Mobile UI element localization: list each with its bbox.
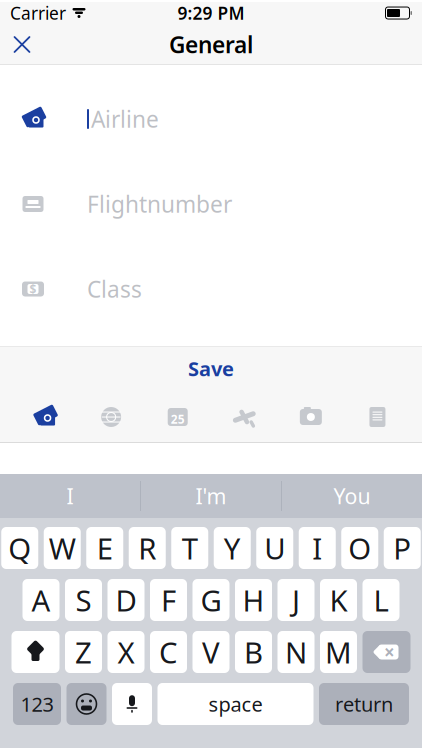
staticText: W <box>49 528 76 567</box>
button[interactable]: B <box>235 631 272 673</box>
button[interactable]: space <box>157 683 313 725</box>
button[interactable]: $ <box>0 265 422 313</box>
button[interactable]: L <box>362 579 399 621</box>
button[interactable]: D <box>107 579 144 621</box>
staticText: S <box>75 580 91 619</box>
button[interactable]: Save <box>0 346 422 391</box>
staticText: Q <box>8 528 31 567</box>
button[interactable]: Airline <box>23 395 67 439</box>
staticText: H <box>242 580 264 619</box>
button[interactable]: I <box>0 474 140 518</box>
staticText: C <box>159 632 178 671</box>
staticText: J <box>292 580 300 619</box>
staticText: X <box>117 632 134 671</box>
button[interactable]: W <box>44 527 81 569</box>
button[interactable]: S <box>65 579 102 621</box>
staticText: 25 <box>171 411 185 427</box>
button[interactable]: R <box>129 527 166 569</box>
button[interactable]: Shift <box>11 631 59 673</box>
button[interactable]: P <box>384 527 421 569</box>
staticText: M <box>325 632 352 671</box>
button[interactable]: Photo <box>289 395 333 439</box>
button[interactable]: I'm <box>141 474 281 518</box>
button[interactable]: N <box>277 631 314 673</box>
staticText: P <box>393 528 411 567</box>
button[interactable]: 123 <box>13 683 61 725</box>
staticText: D <box>115 580 136 619</box>
staticText: B <box>244 632 263 671</box>
staticText: L <box>373 580 388 619</box>
button[interactable]: Emoji <box>66 683 106 725</box>
button[interactable]: X <box>107 631 144 673</box>
button[interactable]: Close <box>0 24 44 65</box>
staticText: General <box>169 29 253 59</box>
button[interactable]: Z <box>65 631 102 673</box>
staticText: Z <box>75 632 92 671</box>
staticText: Carrier <box>10 1 66 24</box>
button[interactable]: A <box>22 579 59 621</box>
button[interactable]: M <box>320 631 357 673</box>
button[interactable]: G <box>192 579 229 621</box>
staticText: 123 <box>20 691 53 717</box>
button[interactable]: Documents <box>355 395 399 439</box>
button[interactable]: Airline <box>0 95 422 143</box>
staticText: I <box>66 482 73 510</box>
staticText: V <box>202 632 220 671</box>
staticText: T <box>182 528 198 567</box>
button[interactable]: J <box>277 579 314 621</box>
button[interactable]: Dictation <box>112 683 152 725</box>
button[interactable]: U <box>256 527 293 569</box>
button[interactable]: H <box>235 579 272 621</box>
button[interactable]: O <box>341 527 378 569</box>
button[interactable]: Q <box>1 527 38 569</box>
staticText: K <box>329 580 347 619</box>
staticText: G <box>200 580 221 619</box>
staticText: Class <box>87 274 142 304</box>
staticText: space <box>208 691 262 717</box>
button[interactable]: E <box>86 527 123 569</box>
button[interactable]: Flightnumber <box>0 180 422 228</box>
button[interactable]: You <box>282 474 422 518</box>
staticText: I <box>312 528 322 567</box>
button[interactable]: Date <box>156 395 200 439</box>
button[interactable]: K <box>320 579 357 621</box>
staticText: 9:29 PM <box>177 1 244 24</box>
button[interactable]: I <box>299 527 336 569</box>
button[interactable]: F <box>150 579 187 621</box>
staticText: R <box>138 528 156 567</box>
staticText: $ <box>29 281 36 297</box>
staticText: N <box>285 632 307 671</box>
staticText: Flightnumber <box>87 189 232 219</box>
button[interactable]: Delete <box>362 631 410 673</box>
staticText: F <box>161 580 176 619</box>
staticText: Y <box>224 528 241 567</box>
staticText: A <box>31 580 50 619</box>
staticText: E <box>97 528 113 567</box>
staticText: Save <box>188 355 234 382</box>
button[interactable]: return <box>319 683 409 725</box>
button[interactable]: T <box>171 527 208 569</box>
staticText: return <box>335 691 393 717</box>
button[interactable]: Y <box>214 527 251 569</box>
staticText: I'm <box>195 482 226 510</box>
staticText: × <box>384 640 395 664</box>
button[interactable]: C <box>150 631 187 673</box>
staticText: U <box>264 528 285 567</box>
staticText: You <box>333 482 370 510</box>
button[interactable]: V <box>192 631 229 673</box>
button[interactable]: Region <box>89 395 133 439</box>
button[interactable]: Flight <box>222 395 266 439</box>
staticText: O <box>348 528 371 567</box>
staticText: Airline <box>91 104 159 134</box>
